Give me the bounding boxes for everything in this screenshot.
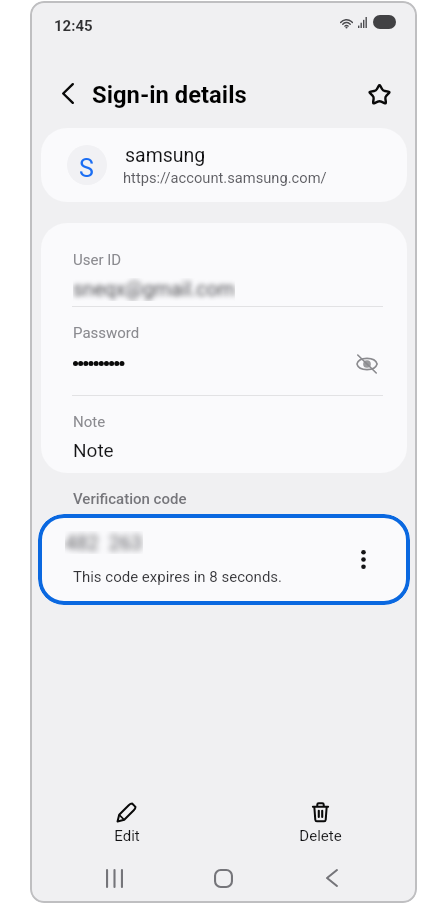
button[interactable]: Show password bbox=[350, 347, 384, 381]
staticText: Password bbox=[73, 324, 140, 342]
staticText: 12:45 bbox=[54, 17, 93, 35]
button[interactable]: Navigate up bbox=[47, 72, 89, 114]
button[interactable]: Delete bbox=[275, 801, 365, 845]
button[interactable]: Add to favourites bbox=[358, 73, 400, 115]
staticText: Note bbox=[73, 439, 114, 461]
staticText: S bbox=[79, 154, 94, 183]
staticText: User ID bbox=[73, 251, 122, 269]
button[interactable]: Back bbox=[308, 854, 356, 902]
button[interactable]: Recent apps bbox=[90, 854, 138, 902]
staticText: This code expires in 8 seconds. bbox=[73, 568, 283, 586]
staticText: samsung bbox=[125, 144, 206, 167]
staticText: Edit bbox=[114, 827, 140, 845]
button[interactable]: More options bbox=[348, 544, 378, 574]
button[interactable]: 482 263 bbox=[38, 514, 410, 605]
staticText: https://account.samsung.com/ bbox=[123, 169, 327, 186]
button[interactable]: Edit bbox=[82, 801, 172, 845]
staticText: Note bbox=[73, 413, 106, 431]
staticText: 482 263 bbox=[65, 531, 143, 554]
staticText: Delete bbox=[299, 827, 342, 845]
staticText: sneqx@gmail.com bbox=[73, 278, 235, 301]
staticText: Verification code bbox=[73, 490, 187, 508]
staticText: Sign-in details bbox=[92, 81, 247, 109]
button[interactable]: Home bbox=[199, 854, 247, 902]
button[interactable]: S bbox=[41, 128, 407, 202]
